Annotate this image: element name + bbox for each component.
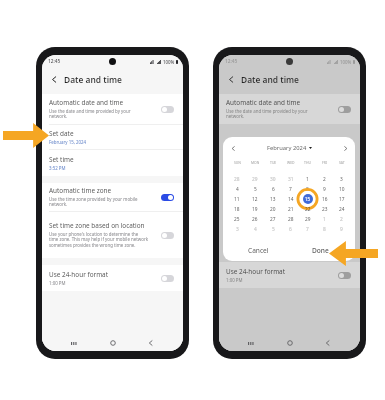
button[interactable]: 27: [264, 214, 282, 224]
button[interactable]: 6: [264, 184, 282, 194]
button[interactable]: Back: [48, 73, 61, 86]
staticText: TUE: [270, 160, 277, 165]
button[interactable]: 30: [264, 174, 282, 184]
staticText: February 2024: [267, 144, 307, 152]
button[interactable]: 23: [316, 204, 333, 214]
button[interactable]: Toggle: [161, 194, 174, 201]
staticText: 1:00 PM: [226, 277, 243, 283]
staticText: 3:52 PM: [49, 165, 66, 171]
staticText: 7: [306, 226, 309, 233]
button[interactable]: 19: [246, 204, 264, 214]
button[interactable]: Set time zone based on location: [42, 212, 183, 258]
staticText: SAT: [339, 160, 345, 165]
button[interactable]: Cancel: [227, 239, 289, 261]
button[interactable]: Set date: [42, 125, 183, 149]
staticText: Date and time: [241, 74, 299, 85]
staticText: 16: [322, 196, 328, 203]
button[interactable]: 2: [333, 214, 350, 224]
staticText: 6: [272, 186, 275, 193]
button[interactable]: 28: [282, 214, 299, 224]
button[interactable]: Use 24-hour format: [42, 265, 183, 291]
button[interactable]: Toggle: [161, 232, 174, 239]
button[interactable]: 5: [246, 184, 264, 194]
staticText: 7: [289, 186, 292, 193]
staticText: 23: [322, 206, 328, 213]
staticText: 28: [288, 216, 294, 223]
button[interactable]: 9: [316, 184, 333, 194]
button[interactable]: Back: [144, 336, 158, 350]
staticText: 31: [288, 176, 294, 183]
button[interactable]: 13: [264, 194, 282, 204]
staticText: Automatic date and time: [226, 98, 301, 107]
button[interactable]: 3: [333, 174, 350, 184]
staticText: 8: [323, 226, 326, 233]
staticText: Automatic date and time: [49, 98, 124, 107]
staticText: Date and time: [64, 74, 122, 85]
staticText: 12:45: [225, 58, 238, 65]
staticText: 30: [270, 176, 276, 183]
staticText: 9: [340, 226, 343, 233]
button[interactable]: 6: [282, 224, 299, 234]
button[interactable]: February 2024: [265, 143, 314, 153]
button[interactable]: 12: [246, 194, 264, 204]
button[interactable]: 26: [246, 214, 264, 224]
button[interactable]: Automatic date and time: [42, 94, 183, 124]
button[interactable]: Toggle: [161, 275, 174, 282]
button[interactable]: 5: [264, 224, 282, 234]
staticText: FRI: [322, 160, 328, 165]
staticText: 2: [340, 216, 343, 223]
button[interactable]: Next month: [340, 143, 350, 153]
button[interactable]: 4: [246, 224, 264, 234]
button[interactable]: Recents: [67, 336, 81, 350]
button[interactable]: 28: [228, 174, 246, 184]
button[interactable]: Previous month: [228, 143, 238, 153]
button[interactable]: 17: [333, 194, 350, 204]
button[interactable]: 3: [228, 224, 246, 234]
staticText: MON: [251, 160, 260, 165]
button[interactable]: 1: [316, 214, 333, 224]
button[interactable]: 31: [282, 174, 299, 184]
button[interactable]: 7: [299, 224, 316, 234]
button[interactable]: Automatic time zone: [42, 183, 183, 211]
staticText: 11: [234, 196, 240, 203]
button[interactable]: 18: [228, 204, 246, 214]
button[interactable]: 10: [333, 184, 350, 194]
staticText: 29: [305, 216, 311, 223]
button[interactable]: Home: [106, 336, 120, 350]
staticText: 20: [270, 206, 276, 213]
button[interactable]: 29: [246, 174, 264, 184]
button[interactable]: Toggle: [338, 106, 351, 113]
staticText: Use your phone's location to determine t…: [49, 231, 149, 249]
button[interactable]: 8: [316, 224, 333, 234]
staticText: Use 24-hour format: [49, 270, 109, 279]
button[interactable]: 24: [333, 204, 350, 214]
button[interactable]: 4: [228, 184, 246, 194]
button[interactable]: 15: [299, 194, 316, 204]
button[interactable]: 11: [228, 194, 246, 204]
button[interactable]: Done: [289, 239, 351, 261]
staticText: 24: [339, 206, 345, 213]
button[interactable]: Toggle: [338, 272, 351, 279]
button[interactable]: 9: [333, 224, 350, 234]
button[interactable]: 20: [264, 204, 282, 214]
staticText: Use the date and time provided by your n…: [226, 108, 308, 120]
staticText: Use the date and time provided by your n…: [49, 108, 131, 120]
button[interactable]: 8: [299, 184, 316, 194]
staticText: 1: [323, 216, 326, 223]
staticText: 8: [306, 186, 309, 193]
staticText: 21: [288, 206, 294, 213]
button[interactable]: 29: [299, 214, 316, 224]
staticText: 100%: [340, 59, 352, 65]
button[interactable]: 7: [282, 184, 299, 194]
button[interactable]: 22: [299, 204, 316, 214]
staticText: 25: [234, 216, 240, 223]
button[interactable]: 21: [282, 204, 299, 214]
button[interactable]: 16: [316, 194, 333, 204]
button[interactable]: Toggle: [161, 106, 174, 113]
staticText: 12: [252, 196, 258, 203]
button[interactable]: 14: [282, 194, 299, 204]
button[interactable]: 2: [316, 174, 333, 184]
button[interactable]: 1: [299, 174, 316, 184]
button[interactable]: Set time: [42, 150, 183, 176]
button[interactable]: 25: [228, 214, 246, 224]
